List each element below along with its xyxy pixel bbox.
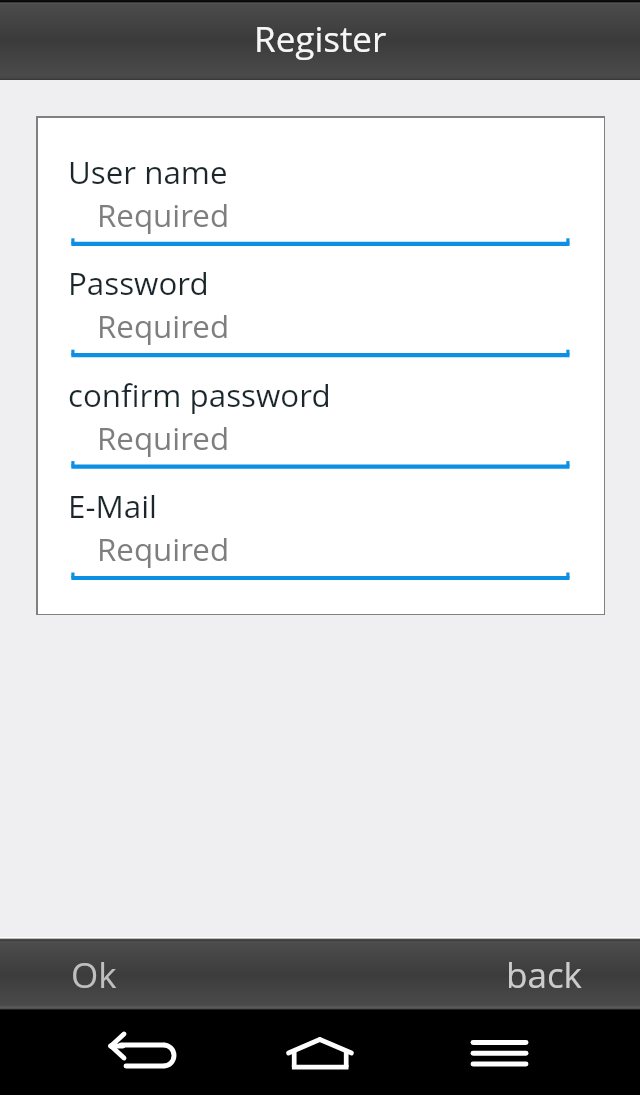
staticText: Required — [97, 528, 230, 571]
button[interactable] — [71, 311, 569, 357]
staticText: Ok — [71, 951, 117, 999]
staticText: back — [506, 951, 582, 999]
staticText: Required — [97, 417, 230, 460]
button[interactable]: Menu — [454, 1026, 546, 1084]
button[interactable] — [71, 534, 569, 580]
button[interactable]: Back — [96, 1026, 188, 1084]
staticText: Required — [97, 194, 230, 237]
button[interactable]: Ok — [0, 937, 320, 1010]
staticText: E-Mail — [68, 485, 157, 528]
button[interactable]: Home — [274, 1026, 366, 1084]
button[interactable]: back — [320, 937, 640, 1010]
staticText: User name — [68, 151, 228, 194]
staticText: confirm password — [68, 374, 331, 417]
staticText: Password — [68, 262, 209, 305]
staticText: Required — [97, 305, 230, 348]
staticText: Register — [254, 15, 387, 63]
button[interactable] — [71, 200, 569, 246]
button[interactable] — [71, 423, 569, 469]
